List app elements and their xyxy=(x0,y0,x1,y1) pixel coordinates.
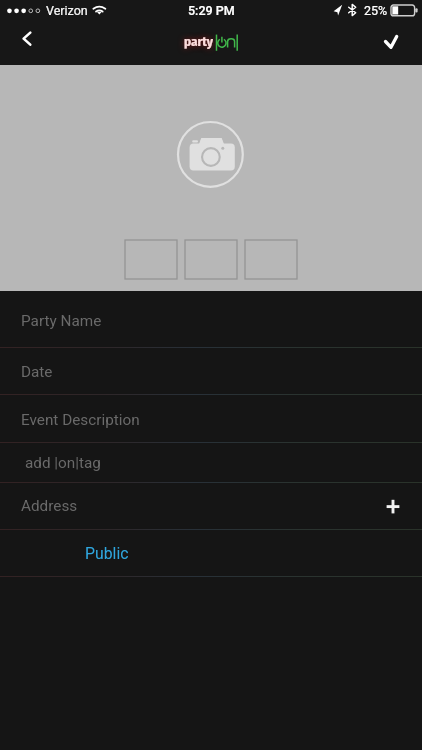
staticText: Party Name xyxy=(21,312,102,330)
staticText: Verizon xyxy=(46,3,88,18)
button[interactable]: Date xyxy=(0,348,422,394)
button[interactable]: Photo slot xyxy=(185,240,237,279)
button[interactable]: Public xyxy=(0,530,422,576)
button[interactable]: Party Name xyxy=(0,291,422,347)
staticText: Address xyxy=(21,497,78,515)
button[interactable]: Add address xyxy=(378,484,422,528)
staticText: Event Description xyxy=(21,411,140,429)
button[interactable]: Photo slot xyxy=(245,240,297,279)
button[interactable]: Address xyxy=(0,483,422,529)
button[interactable]: Event Description xyxy=(0,395,422,442)
staticText: 25% xyxy=(364,3,388,18)
button[interactable]: Photo slot xyxy=(125,240,177,279)
button[interactable]: Back xyxy=(0,20,48,65)
staticText: Public xyxy=(85,544,129,563)
button[interactable]: Add photo xyxy=(178,121,245,188)
staticText: 5:29 PM xyxy=(188,3,235,18)
staticText: party xyxy=(184,34,214,50)
button[interactable]: add |on|tag xyxy=(0,443,422,482)
staticText: add |on|tag xyxy=(25,454,101,472)
button[interactable]: Done xyxy=(377,20,422,65)
staticText: Date xyxy=(21,363,53,381)
